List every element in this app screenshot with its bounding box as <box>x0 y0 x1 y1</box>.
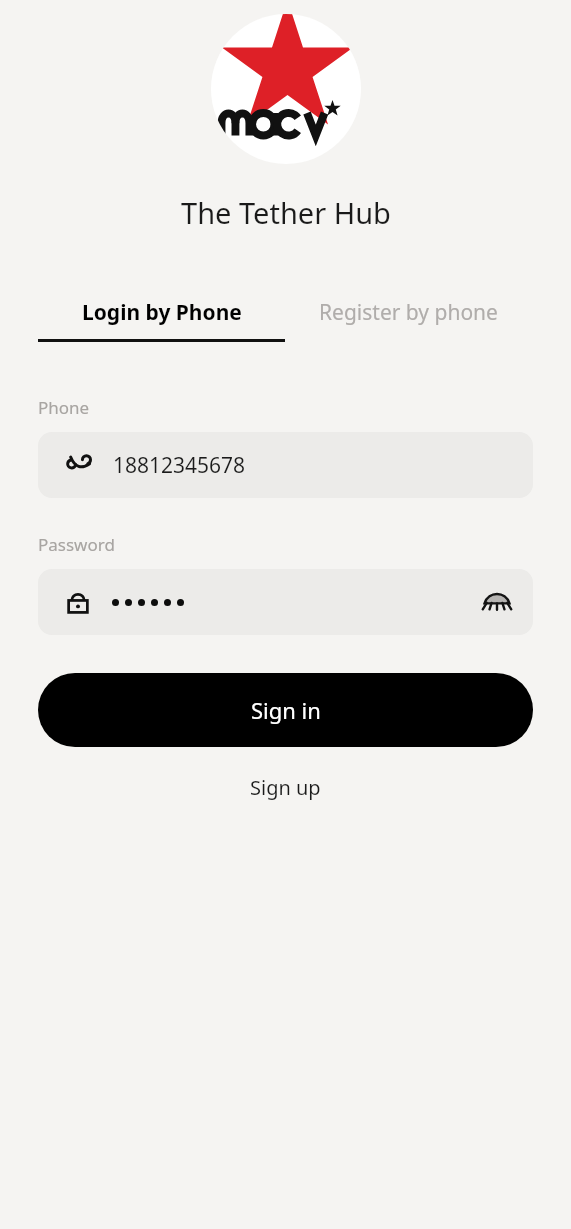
staticText: Register by phone <box>319 298 498 327</box>
staticText: Sign in <box>251 695 321 725</box>
staticText: 18812345678 <box>113 451 246 480</box>
staticText: Password <box>38 533 115 556</box>
button[interactable]: Show password <box>38 569 533 635</box>
staticText: The Tether Hub <box>181 193 391 232</box>
staticText: Sign up <box>250 774 321 801</box>
staticText: Phone <box>38 396 90 419</box>
button[interactable]: Register by phone <box>285 294 532 330</box>
button[interactable]: Login by Phone <box>38 294 285 342</box>
button[interactable]: Show password <box>473 578 521 626</box>
staticText: Login by Phone <box>82 298 242 327</box>
button[interactable]: 18812345678 <box>38 432 533 498</box>
button[interactable]: Sign in <box>38 673 533 747</box>
button[interactable]: Sign up <box>226 766 345 809</box>
